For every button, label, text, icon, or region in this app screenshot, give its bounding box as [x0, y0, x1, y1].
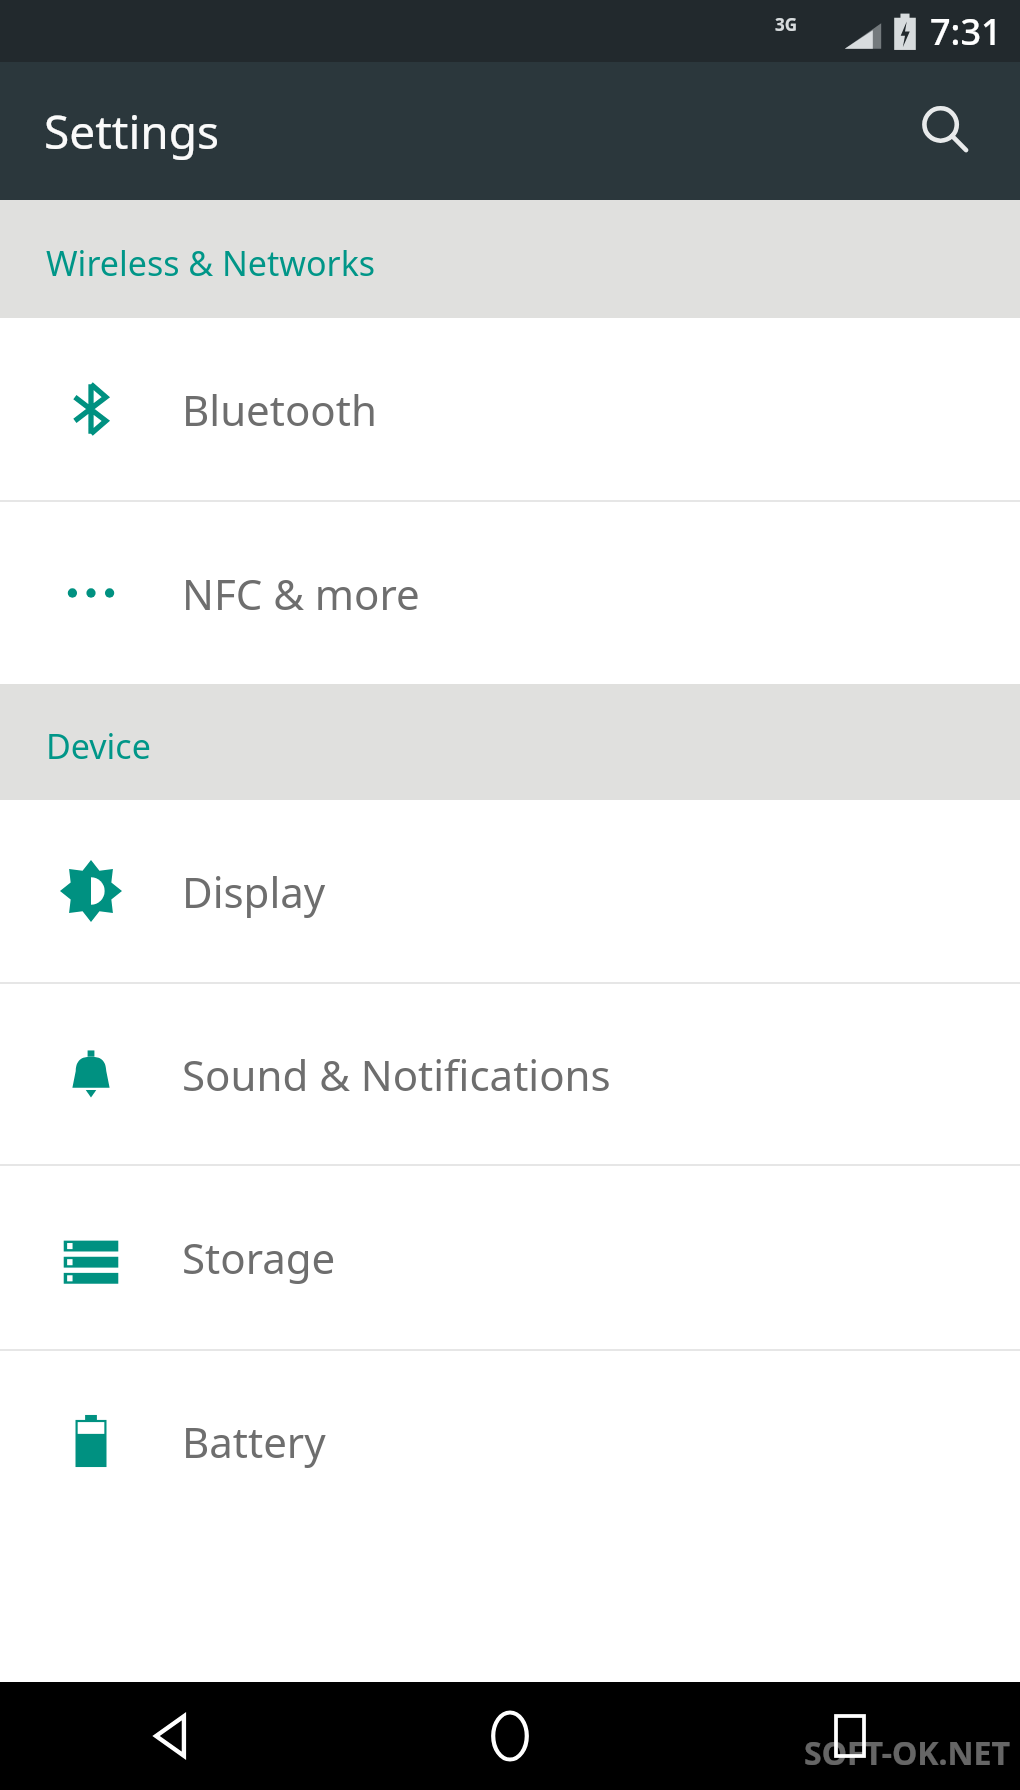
staticText: Settings	[44, 100, 220, 163]
button[interactable]: Bluetooth	[0, 318, 1020, 500]
button[interactable]: Recent apps	[680, 1682, 1020, 1790]
staticText: Bluetooth	[182, 381, 377, 438]
button[interactable]: Home	[340, 1682, 680, 1790]
button[interactable]: Display	[0, 800, 1020, 982]
button[interactable]: Battery	[0, 1351, 1020, 1531]
staticText: 7:31	[930, 7, 1002, 56]
staticText: 3G	[775, 13, 798, 36]
staticText: SOFT-OK.NET	[804, 1731, 1010, 1775]
staticText: Wireless & Networks	[46, 240, 376, 286]
staticText: Battery	[182, 1413, 326, 1470]
button[interactable]: Storage	[0, 1166, 1020, 1349]
button[interactable]: NFC & more	[0, 502, 1020, 684]
button[interactable]: Sound & Notifications	[0, 984, 1020, 1164]
staticText: Storage	[182, 1229, 336, 1286]
button[interactable]: Search	[898, 83, 994, 179]
staticText: NFC & more	[182, 565, 420, 622]
staticText: Sound & Notifications	[182, 1046, 611, 1103]
staticText: Display	[182, 863, 326, 920]
button[interactable]: Back	[0, 1682, 340, 1790]
staticText: Device	[46, 723, 151, 769]
